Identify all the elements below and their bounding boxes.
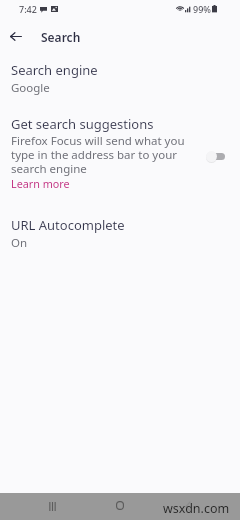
staticText: Get search suggestions xyxy=(11,115,154,133)
staticText: wsxdn.com xyxy=(163,500,230,517)
staticText: 99% xyxy=(193,3,211,15)
button[interactable]: Back xyxy=(174,493,202,520)
staticText: Search engine xyxy=(11,61,98,79)
button[interactable]: Get search suggestions toggle xyxy=(205,148,229,164)
button[interactable]: Learn more xyxy=(11,175,70,192)
staticText: On xyxy=(11,235,28,251)
button[interactable]: Back xyxy=(4,24,28,48)
staticText: Google xyxy=(11,80,50,96)
staticText: Search xyxy=(41,29,81,45)
staticText: Learn more xyxy=(11,176,70,191)
button[interactable]: Home xyxy=(106,492,134,519)
button[interactable]: Recent apps xyxy=(38,493,66,520)
button[interactable]: Search engine xyxy=(0,57,240,100)
staticText: URL Autocomplete xyxy=(11,216,125,234)
staticText: 7:42 xyxy=(19,3,37,15)
staticText: Firefox Focus will send what you type in… xyxy=(11,133,197,176)
button[interactable]: URL Autocomplete xyxy=(0,212,240,255)
button[interactable]: Get search suggestions xyxy=(0,111,240,197)
